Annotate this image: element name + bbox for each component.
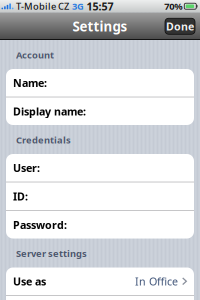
staticText: 15:57 [86, 0, 113, 13]
staticText: 70% [164, 0, 182, 12]
staticText: Name: [13, 76, 47, 90]
button[interactable]: Name: [6, 69, 194, 96]
button[interactable]: Done [165, 18, 195, 34]
button[interactable]: ID: [6, 182, 194, 210]
staticText: In Office [135, 274, 178, 288]
button[interactable]: Use as [6, 267, 194, 295]
staticText: Settings [72, 17, 127, 35]
staticText: Credentials [16, 134, 71, 146]
staticText: Display name: [13, 104, 86, 118]
button[interactable]: Display name: [6, 97, 194, 125]
staticText: 3G [72, 0, 84, 12]
staticText: Use as [13, 274, 46, 288]
staticText: Password: [13, 218, 67, 232]
staticText: Account [16, 49, 54, 61]
staticText: Done [166, 19, 194, 33]
staticText: ID: [13, 189, 28, 203]
button[interactable]: User: [6, 154, 194, 181]
staticText: T-Mobile CZ [16, 0, 69, 12]
staticText: Server settings [16, 247, 87, 259]
staticText: User: [13, 161, 40, 175]
button[interactable]: Password: [6, 211, 194, 238]
